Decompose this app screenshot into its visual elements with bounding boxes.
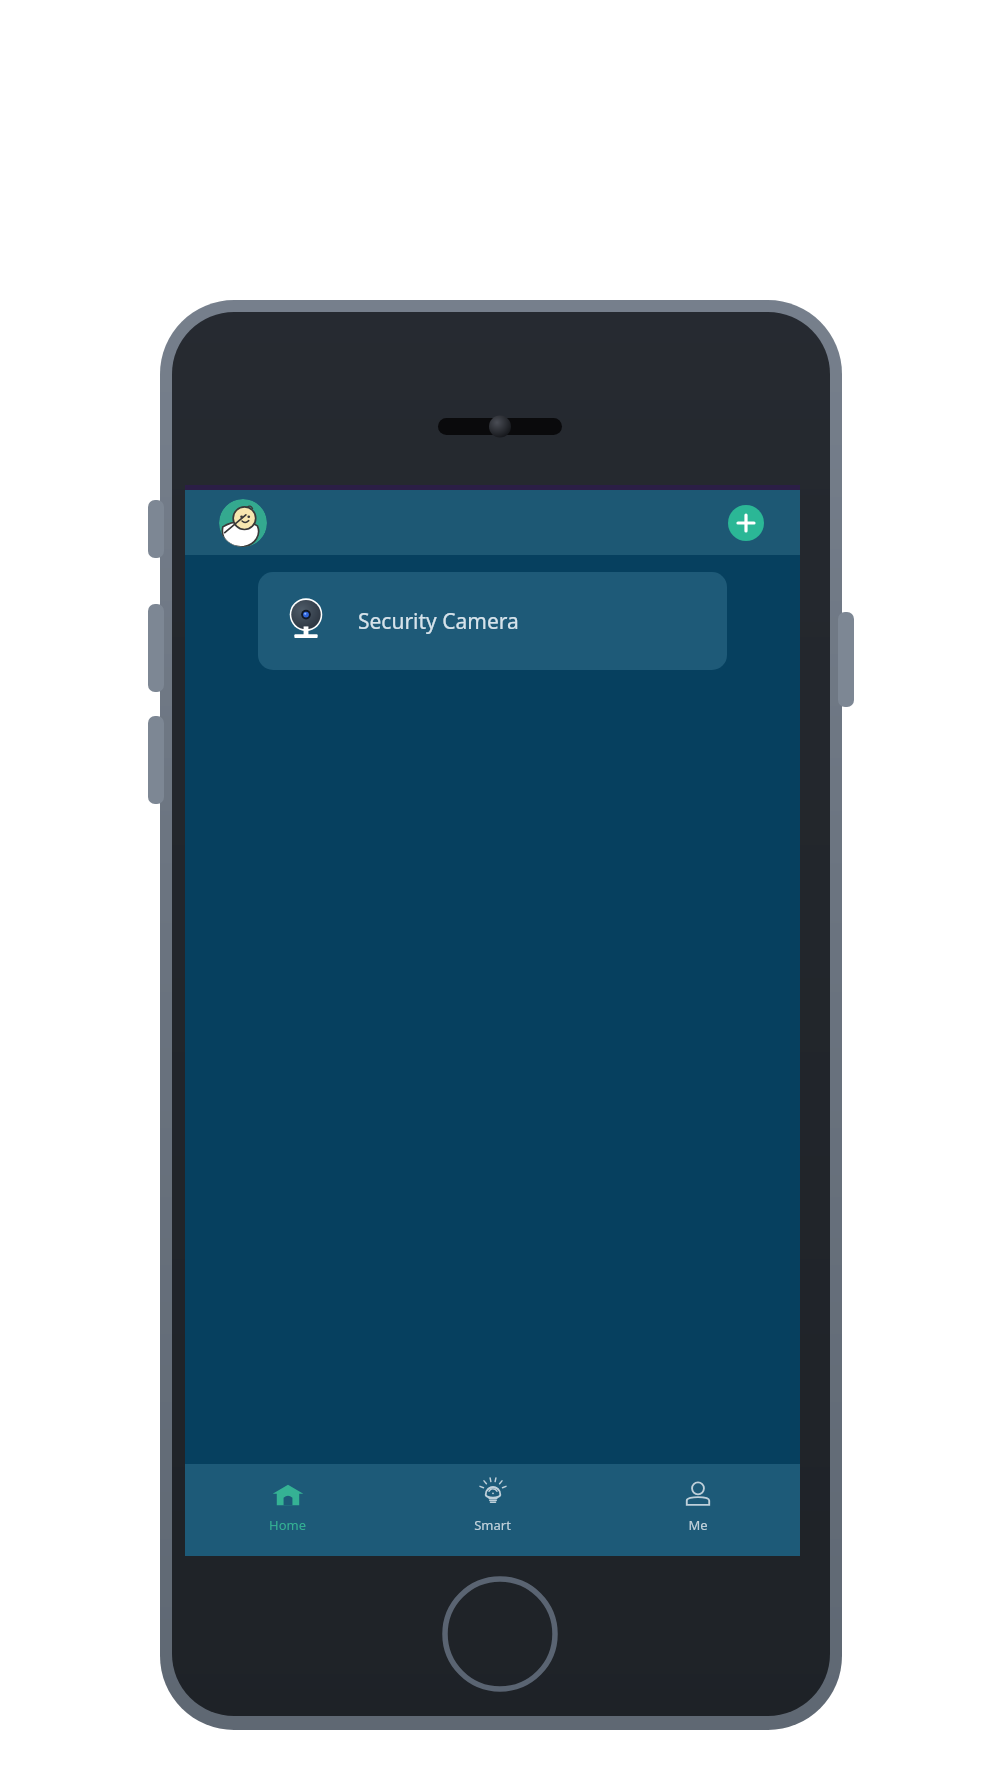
staticText: Security Camera (358, 607, 519, 636)
staticText: Home (269, 1516, 306, 1534)
button[interactable]: Smart (390, 1464, 595, 1556)
button[interactable]: Home (185, 1464, 390, 1556)
button[interactable]: Add device (728, 505, 764, 541)
staticText: Smart (474, 1516, 511, 1534)
button[interactable]: Profile (219, 499, 267, 547)
button[interactable]: Me (595, 1464, 800, 1556)
staticText: Me (688, 1516, 708, 1534)
button[interactable]: Security Camera (258, 572, 727, 670)
